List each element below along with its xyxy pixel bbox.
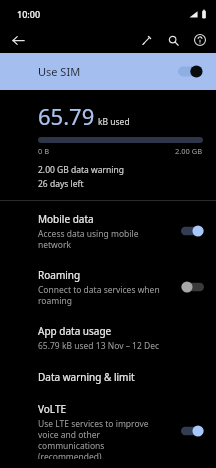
staticText: Access data using mobile network bbox=[38, 228, 161, 250]
staticText: Connect to data services when roaming bbox=[38, 284, 161, 306]
staticText: Use LTE services to improve voice and ot… bbox=[38, 418, 161, 459]
staticText: 0 B bbox=[38, 146, 50, 156]
staticText: 2.00 GB bbox=[175, 146, 203, 156]
button[interactable]: 65.79 bbox=[0, 90, 216, 200]
button[interactable]: Back bbox=[6, 28, 30, 52]
button[interactable]: App data usage bbox=[0, 315, 216, 361]
button[interactable]: Data warning & limit bbox=[0, 361, 216, 393]
staticText: kB used bbox=[98, 116, 130, 128]
staticText: App data usage bbox=[38, 324, 112, 338]
staticText: 2.00 GB data warning bbox=[38, 164, 124, 176]
button[interactable]: Search bbox=[162, 29, 184, 51]
button[interactable]: Use SIM bbox=[0, 53, 216, 90]
staticText: 65.79 bbox=[38, 101, 95, 131]
staticText: Use SIM bbox=[38, 64, 178, 79]
staticText: VoLTE bbox=[38, 402, 67, 416]
button[interactable]: Roaming bbox=[0, 259, 216, 315]
staticText: Data warning & limit bbox=[38, 370, 135, 384]
staticText: Roaming bbox=[38, 268, 81, 282]
staticText: Mobile data bbox=[38, 212, 94, 226]
button[interactable]: Mobile data bbox=[0, 203, 216, 259]
button[interactable]: Help bbox=[189, 29, 211, 51]
staticText: 26 days left bbox=[38, 178, 84, 190]
staticText: 10:00 bbox=[17, 8, 41, 20]
button[interactable]: Edit bbox=[135, 29, 157, 51]
staticText: 65.79 kB used 13 Nov – 12 Dec bbox=[38, 340, 187, 352]
button[interactable]: VoLTE bbox=[0, 393, 216, 468]
